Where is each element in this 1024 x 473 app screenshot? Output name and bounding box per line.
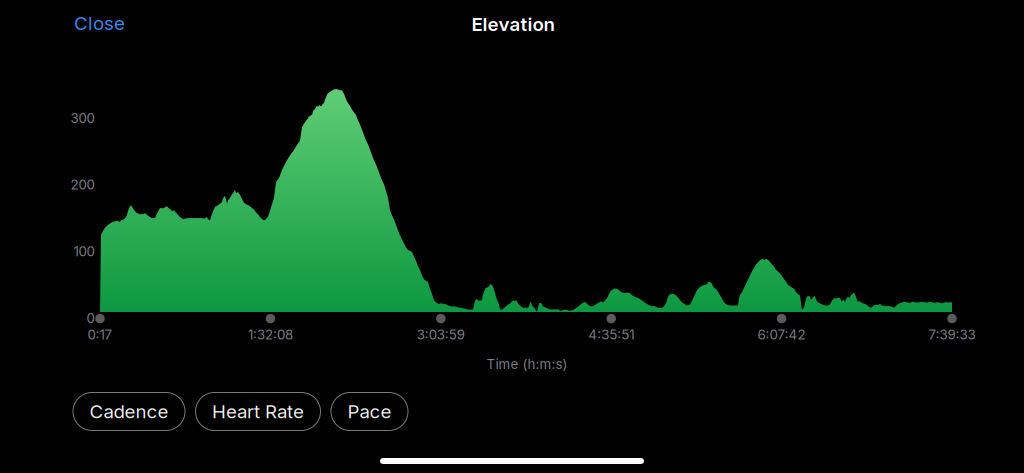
button[interactable]: Pace — [331, 392, 408, 430]
staticText: Time (h:m:s) — [486, 356, 567, 372]
button[interactable]: Cadence — [73, 392, 185, 430]
staticText: Cadence — [89, 400, 168, 423]
staticText: 3:03:59 — [417, 326, 465, 343]
staticText: 0 — [86, 310, 94, 326]
staticText: 6:07:42 — [758, 326, 806, 343]
button[interactable]: Close — [68, 7, 131, 40]
staticText: 7:39:33 — [928, 326, 975, 343]
staticText: Heart Rate — [212, 400, 304, 423]
staticText: 100 — [73, 243, 94, 259]
staticText: 300 — [70, 110, 94, 126]
staticText: Close — [74, 12, 125, 35]
staticText: Pace — [347, 400, 391, 423]
staticText: 0:17 — [87, 326, 112, 343]
staticText: 1:32:08 — [248, 326, 293, 343]
button[interactable]: Heart Rate — [195, 392, 320, 430]
staticText: 4:35:51 — [588, 326, 634, 343]
staticText: 200 — [70, 177, 94, 193]
staticText: Elevation — [471, 13, 554, 36]
